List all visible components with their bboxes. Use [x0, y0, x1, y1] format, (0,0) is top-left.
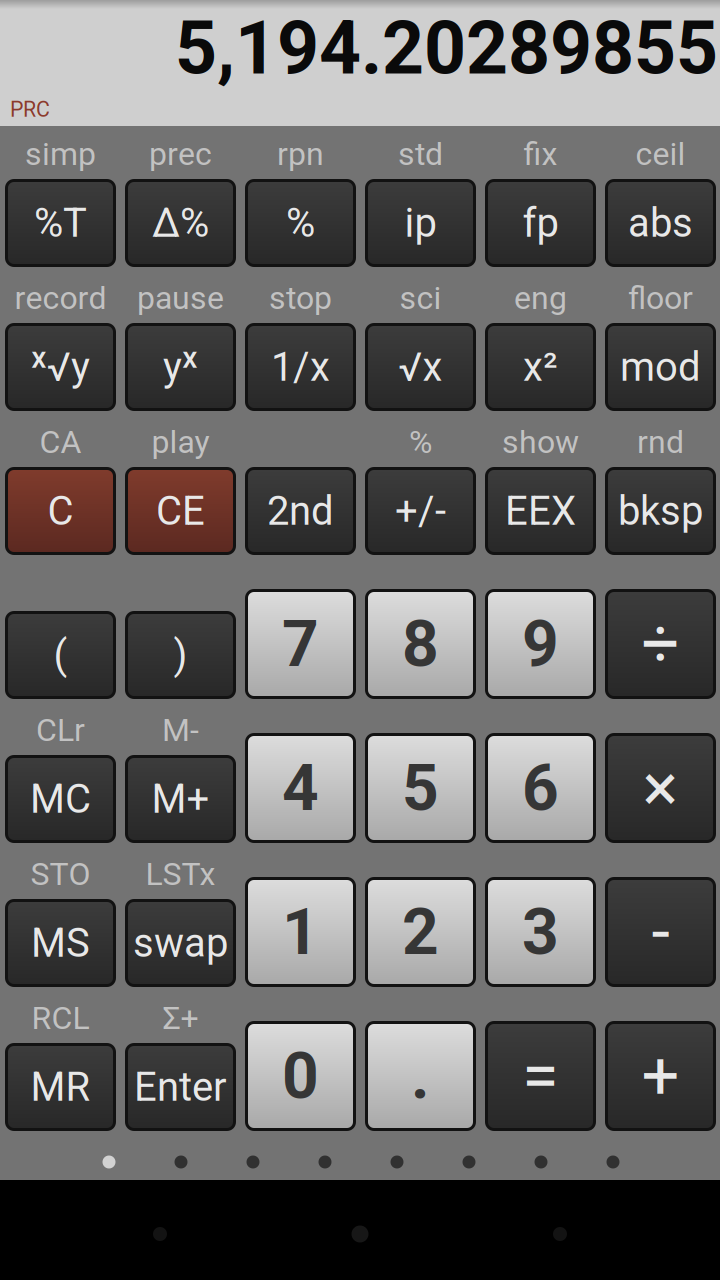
button[interactable]: Keypad page 8	[577, 1139, 649, 1185]
staticText: ×	[642, 749, 678, 827]
staticText: simp	[25, 135, 96, 173]
staticText: fp	[522, 200, 558, 246]
staticText: =	[522, 1037, 559, 1115]
button[interactable]: mod	[605, 323, 716, 411]
button[interactable]: 5	[365, 733, 476, 843]
staticText: ip	[404, 200, 436, 246]
staticText: %T	[34, 200, 87, 246]
staticText: C	[47, 488, 73, 534]
button[interactable]: EEX	[485, 467, 596, 555]
button[interactable]: 2nd	[245, 467, 356, 555]
button[interactable]: 2	[365, 877, 476, 987]
button[interactable]: 8	[365, 589, 476, 699]
button[interactable]: -	[605, 877, 716, 987]
staticText: stop	[269, 279, 332, 317]
button[interactable]: (	[5, 611, 116, 699]
staticText: %	[409, 423, 432, 461]
staticText: CLr	[36, 711, 85, 749]
staticText: %	[286, 200, 315, 246]
button[interactable]: 4	[245, 733, 356, 843]
button[interactable]: Keypad page 4	[289, 1139, 361, 1185]
button[interactable]: swap	[125, 899, 236, 987]
button[interactable]: 6	[485, 733, 596, 843]
staticText: CE	[156, 488, 205, 534]
staticText: pause	[137, 279, 224, 317]
staticText: rnd	[637, 423, 684, 461]
staticText: 3	[522, 894, 559, 969]
staticText: 5,194.20289855	[175, 5, 718, 91]
button[interactable]: Keypad page 3	[217, 1139, 289, 1185]
button[interactable]: Enter	[125, 1043, 236, 1131]
button[interactable]: Keypad page 7	[505, 1139, 577, 1185]
staticText: EEX	[505, 488, 576, 534]
button[interactable]: +/-	[365, 467, 476, 555]
staticText: M+	[151, 776, 209, 822]
staticText: sci	[399, 279, 441, 317]
button[interactable]: 1	[245, 877, 356, 987]
staticText: fix	[523, 135, 557, 173]
button[interactable]: MS	[5, 899, 116, 987]
staticText: RCL	[31, 999, 89, 1037]
button[interactable]: =	[485, 1021, 596, 1131]
button[interactable]: C	[5, 467, 116, 555]
button[interactable]: 0	[245, 1021, 356, 1131]
staticText: bksp	[618, 488, 703, 534]
staticText: 2	[402, 894, 439, 969]
button[interactable]: Keypad page 5	[361, 1139, 433, 1185]
button[interactable]: Keypad page 6	[433, 1139, 505, 1185]
button[interactable]: MR	[5, 1043, 116, 1131]
staticText: 9	[522, 606, 559, 681]
button[interactable]: .	[365, 1021, 476, 1131]
staticText: rpn	[277, 135, 324, 173]
staticText: ceil	[635, 135, 685, 173]
button[interactable]: abs	[605, 179, 716, 267]
button[interactable]: x²	[485, 323, 596, 411]
staticText: CA	[39, 423, 81, 461]
staticText: Δ%	[152, 200, 209, 246]
button[interactable]: ÷	[605, 589, 716, 699]
staticText: +/-	[395, 488, 446, 534]
button[interactable]: MC	[5, 755, 116, 843]
staticText: ˣ√y	[31, 344, 90, 390]
button[interactable]: 7	[245, 589, 356, 699]
button[interactable]: %T	[5, 179, 116, 267]
button[interactable]: CE	[125, 467, 236, 555]
staticText: eng	[514, 279, 567, 317]
staticText: 4	[282, 750, 319, 825]
button[interactable]: 9	[485, 589, 596, 699]
button[interactable]: 1/x	[245, 323, 356, 411]
staticText: 5	[402, 750, 439, 825]
button[interactable]: %	[245, 179, 356, 267]
staticText: LSTx	[145, 855, 215, 893]
staticText: yˣ	[163, 344, 198, 390]
staticText: √x	[398, 344, 442, 390]
staticText: MR	[30, 1064, 90, 1110]
button[interactable]: )	[125, 611, 236, 699]
staticText: )	[173, 632, 187, 678]
staticText: abs	[628, 200, 693, 246]
staticText: 8	[402, 606, 439, 681]
button[interactable]: +	[605, 1021, 716, 1131]
button[interactable]: fp	[485, 179, 596, 267]
staticText: Enter	[134, 1064, 227, 1110]
staticText: -	[651, 893, 669, 971]
button[interactable]: Δ%	[125, 179, 236, 267]
button[interactable]: Keypad page 1	[73, 1139, 145, 1185]
button[interactable]: Keypad page 2	[145, 1139, 217, 1185]
staticText: 1	[282, 894, 319, 969]
staticText: show	[502, 423, 579, 461]
button[interactable]: √x	[365, 323, 476, 411]
staticText: ÷	[641, 605, 679, 683]
staticText: MC	[30, 776, 91, 822]
button[interactable]: ip	[365, 179, 476, 267]
button[interactable]: ×	[605, 733, 716, 843]
button[interactable]: 3	[485, 877, 596, 987]
staticText: MS	[31, 920, 90, 966]
button[interactable]: yˣ	[125, 323, 236, 411]
button[interactable]: ˣ√y	[5, 323, 116, 411]
button[interactable]: bksp	[605, 467, 716, 555]
button[interactable]: M+	[125, 755, 236, 843]
